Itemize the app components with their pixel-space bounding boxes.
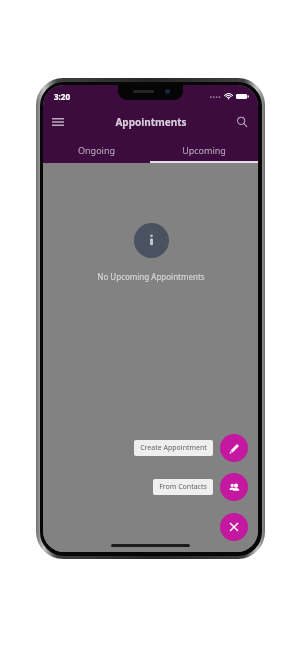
staticText: No Upcoming Appointments	[97, 271, 205, 282]
button[interactable]: Create Appointment	[134, 440, 213, 456]
staticText: Upcoming	[182, 144, 226, 156]
button[interactable]: Open navigation menu	[46, 110, 70, 134]
staticText: Ongoing	[78, 144, 115, 156]
staticText: 3:20	[54, 91, 70, 102]
button[interactable]: From Contacts	[220, 473, 248, 501]
staticText: Create Appointment	[140, 443, 207, 453]
button[interactable]: Upcoming	[150, 137, 258, 163]
button[interactable]: From Contacts	[153, 479, 213, 495]
button[interactable]: Ongoing	[43, 137, 150, 163]
button[interactable]: Create Appointment	[220, 434, 248, 462]
staticText: Appointments	[115, 115, 187, 129]
button[interactable]: Close menu	[220, 513, 248, 541]
button[interactable]: Search	[230, 110, 254, 134]
staticText: From Contacts	[159, 482, 207, 492]
